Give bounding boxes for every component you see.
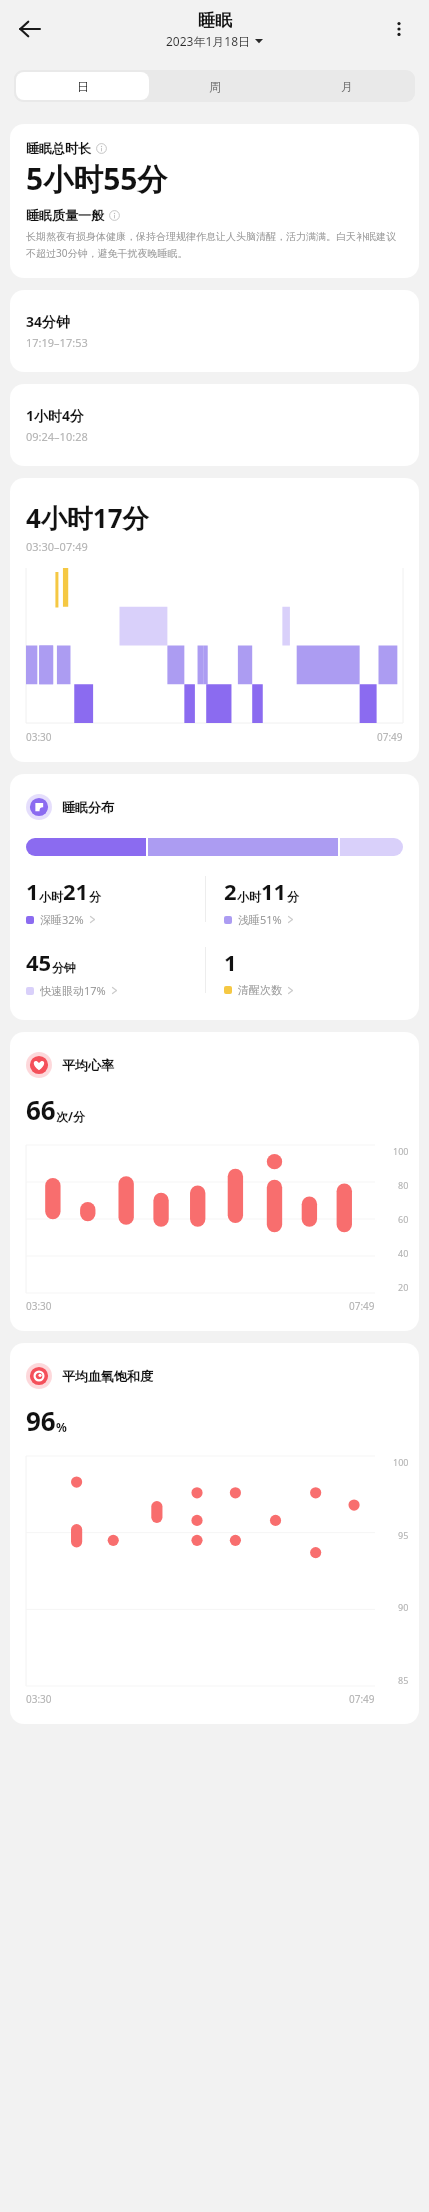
staticText: 60 (398, 1213, 409, 1225)
staticText: 睡眠分布 (62, 799, 114, 815)
staticText: 100 (393, 1145, 409, 1157)
staticText: 17:19–17:53 (26, 335, 88, 350)
staticText: 20 (398, 1281, 409, 1293)
staticText: 03:30–07:49 (26, 539, 88, 554)
staticText: 分 (89, 889, 101, 904)
button[interactable]: 1小时4分 (10, 384, 419, 466)
button[interactable]: 45 (26, 947, 205, 998)
staticText: 平均血氧饱和度 (62, 1368, 153, 1384)
staticText: 深睡32% (40, 912, 84, 927)
staticText: 09:24–10:28 (26, 429, 88, 444)
staticText: 1 (26, 876, 39, 906)
staticText: 07:49 (377, 730, 403, 744)
button[interactable]: 1 (26, 876, 205, 927)
staticText: 1 (224, 947, 237, 977)
button[interactable]: 月 (281, 72, 413, 100)
button[interactable]: 2023年1月18日 (166, 33, 263, 49)
button[interactable]: 周 (149, 72, 281, 100)
staticText: 分钟 (52, 960, 76, 975)
staticText: 分 (287, 889, 299, 904)
button[interactable]: Back (8, 7, 52, 51)
staticText: 长期熬夜有损身体健康，保持合理规律作息让人头脑清醒，活力满满。白天补眠建议不超过… (26, 230, 403, 260)
staticText: 睡眠质量一般 (26, 207, 104, 223)
staticText: 34分钟 (26, 312, 71, 331)
button[interactable]: 2 (224, 876, 403, 927)
staticText: 月 (341, 79, 353, 94)
button[interactable]: 34分钟 (10, 290, 419, 372)
button[interactable]: More options (379, 9, 419, 49)
staticText: 96 (26, 1403, 56, 1438)
staticText: % (56, 1419, 67, 1435)
staticText: 周 (209, 79, 221, 94)
staticText: 100 (393, 1456, 409, 1468)
button[interactable]: 1 (224, 947, 403, 997)
staticText: 66 (26, 1092, 56, 1127)
staticText: 07:49 (349, 1299, 375, 1313)
staticText: 睡眠总时长 (26, 140, 91, 156)
staticText: 4小时17分 (26, 500, 149, 536)
staticText: 5小时55分 (26, 158, 168, 199)
staticText: 浅睡51% (238, 912, 282, 927)
staticText: 21 (63, 876, 89, 906)
staticText: 快速眼动17% (40, 983, 106, 998)
button[interactable]: 关于睡眠质量 (109, 210, 120, 221)
staticText: 03:30 (26, 1692, 52, 1706)
staticText: 40 (398, 1247, 409, 1259)
staticText: 日 (77, 79, 89, 94)
staticText: 小时 (237, 889, 261, 904)
staticText: 45 (26, 947, 52, 977)
staticText: 次/分 (56, 1108, 85, 1124)
staticText: 睡眠 (198, 10, 232, 31)
staticText: 2023年1月18日 (166, 33, 251, 49)
staticText: 07:49 (349, 1692, 375, 1706)
staticText: 1小时4分 (26, 406, 85, 425)
button[interactable]: 关于睡眠总时长 (96, 143, 107, 154)
staticText: 95 (398, 1529, 409, 1541)
staticText: 90 (398, 1601, 409, 1613)
staticText: 清醒次数 (238, 983, 282, 997)
button[interactable]: 日 (16, 72, 149, 100)
staticText: 小时 (39, 889, 63, 904)
staticText: 11 (261, 876, 287, 906)
staticText: 2 (224, 876, 237, 906)
staticText: 85 (398, 1674, 409, 1686)
staticText: 80 (398, 1179, 409, 1191)
staticText: 03:30 (26, 730, 52, 744)
staticText: 03:30 (26, 1299, 52, 1313)
staticText: 平均心率 (62, 1057, 114, 1073)
